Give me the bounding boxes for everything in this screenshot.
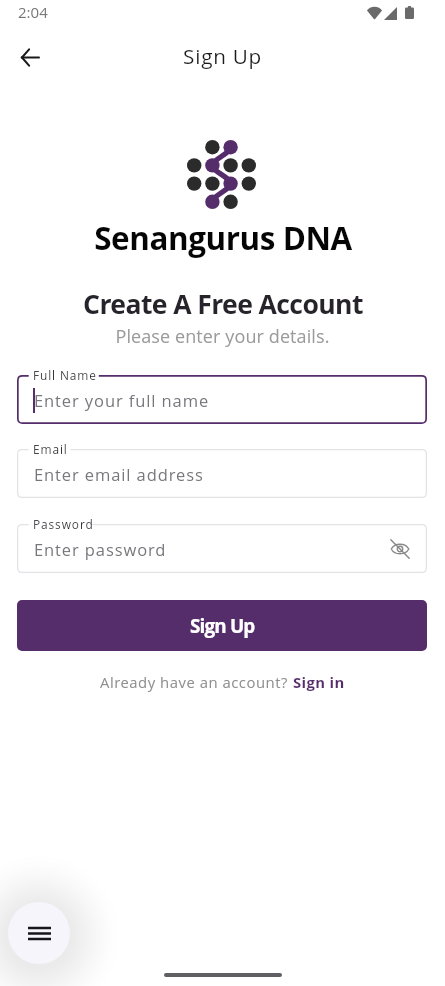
button[interactable]: Show password	[382, 531, 418, 567]
button[interactable]: Sign in	[293, 672, 345, 692]
staticText: Password	[33, 516, 94, 532]
staticText: Sign in	[293, 672, 345, 692]
button[interactable]: Enter email address	[17, 449, 427, 498]
staticText: 2:04	[18, 2, 48, 22]
button[interactable]: Enter your full name	[17, 375, 427, 424]
staticText: Enter email address	[34, 463, 204, 485]
staticText: Sign Up	[183, 42, 262, 70]
button[interactable]: Back	[6, 33, 54, 81]
staticText: Senangurus DNA	[94, 216, 352, 259]
button[interactable]: Sign Up	[17, 600, 427, 651]
staticText: Email	[33, 441, 68, 457]
staticText: Please enter your details.	[115, 324, 330, 349]
button[interactable]: Enter password	[17, 524, 427, 573]
staticText: Enter your full name	[34, 389, 210, 411]
button[interactable]: Menu	[8, 902, 70, 964]
staticText: Enter password	[34, 538, 167, 560]
staticText: Already have an account?	[100, 672, 293, 692]
staticText: Full Name	[33, 367, 97, 383]
staticText: Create A Free Account	[83, 286, 363, 322]
staticText: Sign Up	[190, 613, 255, 639]
